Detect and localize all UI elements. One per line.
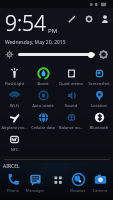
- button[interactable]: Sound: [57, 87, 85, 109]
- staticText: NFC: [0, 147, 29, 152]
- staticText: PM: [48, 27, 58, 35]
- button[interactable]: Location: [85, 87, 113, 109]
- staticText: Phone: [3, 188, 23, 193]
- staticText: Camera: [90, 188, 110, 193]
- button[interactable]: FlashLight: [0, 65, 29, 87]
- staticText: Airplane mo...: [0, 125, 29, 130]
- staticText: Auto-rotate: [29, 103, 57, 108]
- staticText: Wi-Fi: [0, 103, 29, 108]
- button[interactable]: Phone: [3, 172, 23, 193]
- button[interactable]: Auto brightness: [4, 49, 15, 60]
- staticText: AIRCEL: [3, 163, 20, 170]
- button[interactable]: Boost: [29, 65, 57, 87]
- button[interactable]: Browser: [68, 172, 88, 193]
- button[interactable]: Edit quick settings: [66, 13, 77, 24]
- button[interactable]: Settings: [83, 13, 94, 24]
- staticText: Browser: [68, 188, 88, 193]
- staticText: Boost: [29, 81, 57, 86]
- staticText: 9:54: [5, 9, 47, 38]
- button[interactable]: Bluetooth: [85, 109, 113, 131]
- button[interactable]: Airplane mo...: [0, 109, 29, 131]
- staticText: Location: [85, 103, 113, 108]
- staticText: Screenshot: [85, 81, 113, 86]
- staticText: Quick memo: [57, 81, 85, 86]
- staticText: FlashLight: [0, 81, 29, 86]
- button[interactable]: User: [100, 13, 109, 24]
- button[interactable]: Quick memo: [57, 65, 85, 87]
- staticText: Cellular data: [29, 125, 57, 130]
- button[interactable]: Apps: [47, 172, 67, 187]
- button[interactable]: Camera: [90, 172, 110, 193]
- button[interactable]: Cellular data: [29, 109, 57, 131]
- button[interactable]: Auto-rotate: [29, 87, 57, 109]
- button[interactable]: Messaging: [25, 172, 45, 193]
- staticText: Messaging: [25, 188, 45, 193]
- staticText: Bluetooth: [85, 125, 113, 130]
- staticText: Balance no...: [57, 125, 85, 130]
- button[interactable]: NFC: [0, 131, 29, 153]
- staticText: Wednesday, May 20, 2015: [5, 39, 66, 46]
- button[interactable]: Wi-Fi: [0, 87, 29, 109]
- button[interactable]: Screenshot: [85, 65, 113, 87]
- button[interactable]: Collapse panel: [0, 156, 113, 163]
- staticText: Sound: [57, 103, 85, 108]
- button[interactable]: [18, 50, 95, 59]
- button[interactable]: Balance no...: [57, 109, 85, 131]
- button[interactable]: Brightness settings: [98, 49, 109, 60]
